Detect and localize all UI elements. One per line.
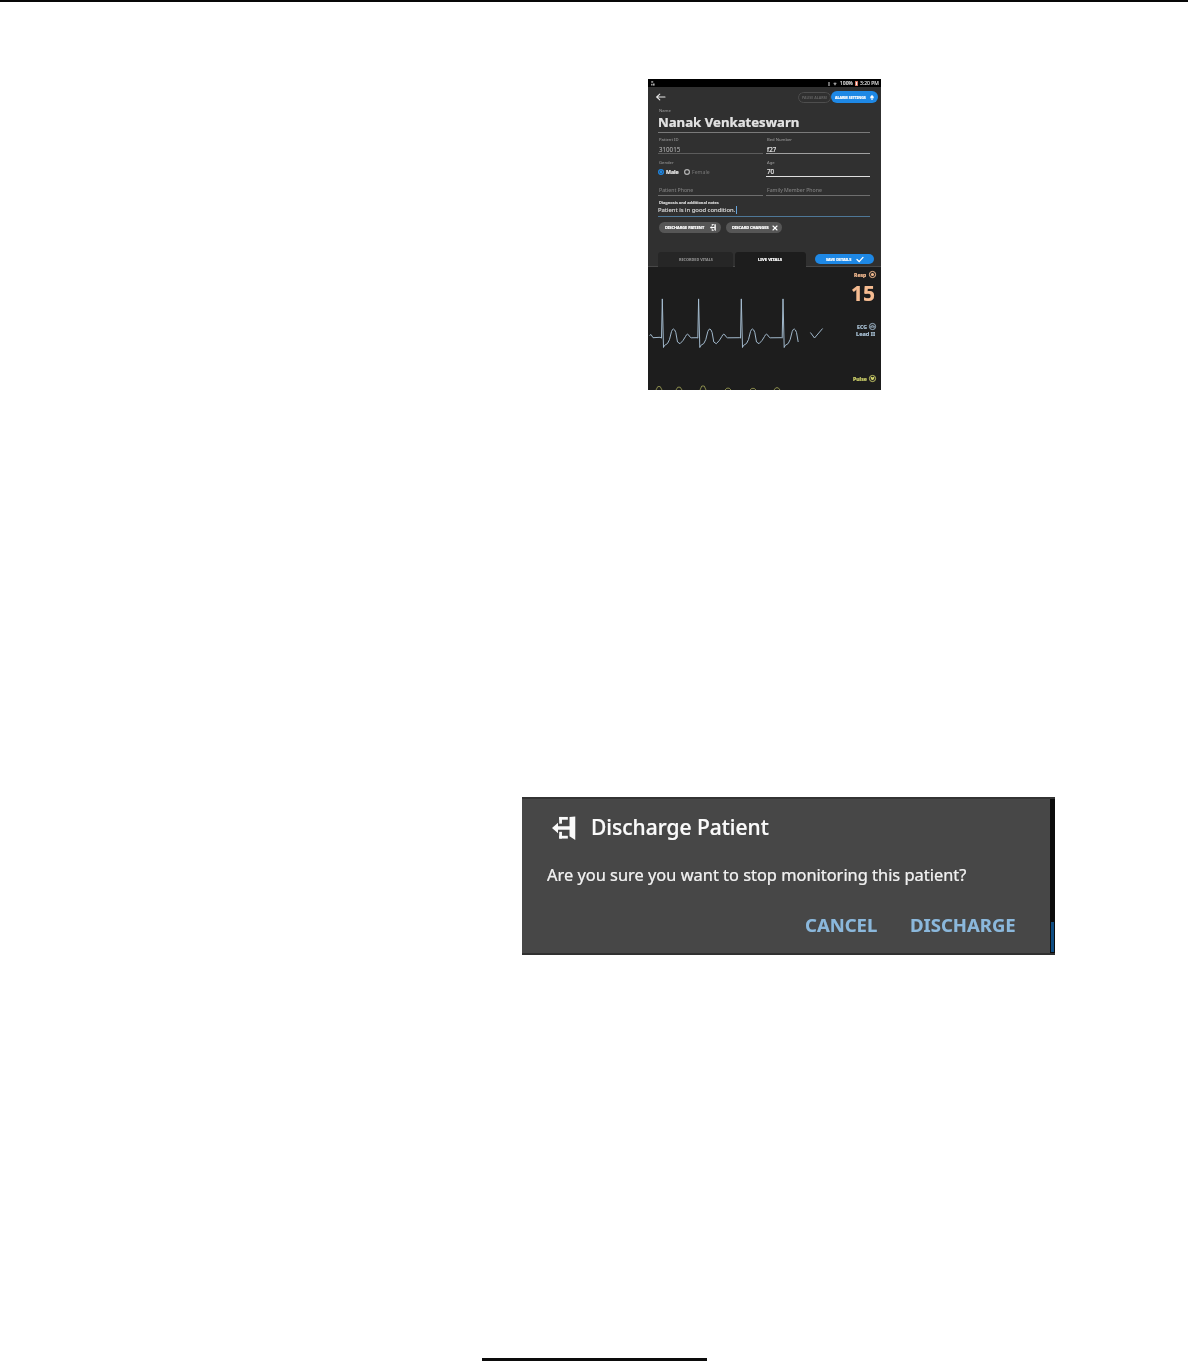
button[interactable]: CANCEL [789, 904, 894, 945]
staticText: Gender [659, 160, 674, 166]
staticText: DISCHARGE PATIENT [665, 225, 705, 230]
button[interactable]: PAUSE ALARM [798, 92, 831, 103]
staticText: DISCHARGE [910, 912, 1016, 937]
staticText: Diagnosis and additional notes [659, 200, 719, 205]
button[interactable]: DISCHARGE PATIENT [659, 222, 721, 233]
staticText: Nanak Venkateswarn [658, 113, 800, 131]
staticText: Are you sure you want to stop monitoring… [547, 863, 967, 885]
staticText: LIVE VITALS [758, 257, 783, 263]
staticText: SAVE DETAILS [826, 257, 852, 262]
staticText: RECORDED VITALS [679, 257, 713, 262]
staticText: Patient ID [659, 137, 679, 143]
staticText: Male [666, 168, 679, 175]
staticText: 70 [767, 167, 775, 175]
staticText: DISCARD CHANGES [732, 225, 769, 230]
button[interactable]: Male [658, 168, 679, 175]
button[interactable]: LIVE VITALS [735, 252, 806, 267]
staticText: Pulse [853, 375, 867, 382]
staticText: Bed Number [767, 137, 793, 143]
staticText: Age [767, 160, 775, 166]
staticText: Discharge Patient [591, 813, 769, 842]
button[interactable]: SAVE DETAILS [815, 254, 874, 264]
button[interactable]: DISCARD CHANGES [726, 222, 782, 233]
staticText: Name [659, 108, 671, 114]
staticText: Lead II [856, 330, 876, 338]
staticText: Resp [854, 271, 867, 278]
button[interactable]: Back [654, 91, 666, 103]
staticText: Patient is in good condition. [658, 206, 736, 214]
button[interactable]: Female [684, 168, 710, 175]
button[interactable]: ALARM SETTINGS [831, 91, 878, 103]
staticText: CANCEL [805, 912, 878, 937]
staticText: ECG [857, 323, 867, 330]
staticText: ALARM SETTINGS [835, 95, 866, 100]
staticText: Family Member Phone [767, 186, 822, 193]
button[interactable]: DISCHARGE [894, 904, 1032, 945]
staticText: Patient Phone [659, 186, 694, 193]
staticText: f27 [767, 145, 777, 153]
staticText: 15 [851, 279, 876, 308]
button[interactable]: RECORDED VITALS [658, 252, 733, 267]
staticText: PAUSE ALARM [802, 95, 827, 100]
staticText: 100% [840, 80, 853, 87]
staticText: 3:20 PM [860, 80, 879, 87]
staticText: 310015 [659, 145, 681, 153]
staticText: Female [692, 168, 710, 175]
